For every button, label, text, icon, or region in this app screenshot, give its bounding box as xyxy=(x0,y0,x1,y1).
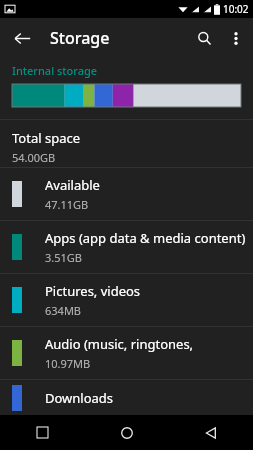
staticText: 54.00GB xyxy=(12,150,56,165)
button[interactable]: Total space xyxy=(0,120,253,167)
staticText: 47.11GB xyxy=(45,197,89,212)
staticText: Audio (music, ringtones, podcasts, et.. xyxy=(45,335,253,353)
button[interactable]: Home xyxy=(85,415,169,450)
staticText: Total space xyxy=(12,129,80,147)
button[interactable]: Back xyxy=(169,415,253,450)
staticText: Downloads xyxy=(45,389,114,407)
button[interactable]: Downloads xyxy=(0,380,253,415)
staticText: Internal storage xyxy=(12,63,98,78)
button[interactable]: More options xyxy=(221,23,251,53)
button[interactable]: Audio (music, ringtones, podcasts, et.. xyxy=(0,327,253,379)
staticText: 10.97MB xyxy=(45,356,91,371)
button[interactable]: Apps (app data & media content) xyxy=(0,221,253,273)
button[interactable]: Search xyxy=(187,21,221,55)
button[interactable]: Recent apps xyxy=(0,415,85,450)
staticText: Available xyxy=(45,176,100,194)
staticText: Pictures, videos xyxy=(45,282,141,300)
staticText: 3.51GB xyxy=(45,250,82,265)
staticText: 634MB xyxy=(45,303,82,318)
staticText: 10:02 xyxy=(223,2,249,16)
button[interactable]: Back xyxy=(6,22,38,54)
button[interactable]: Pictures, videos xyxy=(0,274,253,326)
staticText: Apps (app data & media content) xyxy=(45,229,246,247)
staticText: Storage xyxy=(50,27,110,49)
button[interactable]: Available xyxy=(0,168,253,220)
